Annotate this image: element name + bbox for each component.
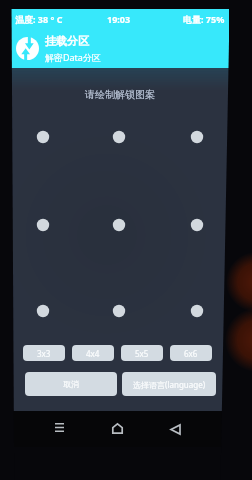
button[interactable]: 挂载分区 — [11, 29, 229, 68]
button[interactable]: 3x3 — [23, 345, 65, 361]
button[interactable]: Back — [163, 417, 187, 441]
staticText: 挂载分区 — [45, 34, 89, 48]
staticText: 5x5 — [135, 348, 149, 359]
button[interactable]: 6x6 — [170, 345, 212, 361]
button[interactable]: Home — [105, 416, 129, 440]
staticText: 温度: 38 ° C — [15, 13, 63, 25]
staticText: 选择语言(language) — [133, 379, 206, 390]
staticText: 19:03 — [107, 13, 131, 25]
staticText: 取消 — [63, 379, 79, 389]
button[interactable]: 4x4 — [72, 345, 114, 361]
staticText: 解密Data分区 — [45, 51, 101, 63]
button[interactable]: 取消 — [25, 372, 117, 396]
button[interactable]: Recents — [47, 415, 71, 439]
staticText: 3x3 — [37, 348, 51, 359]
staticText: 6x6 — [184, 348, 198, 359]
button[interactable]: 选择语言(language) — [122, 372, 216, 396]
staticText: 电量: 75% — [183, 13, 225, 25]
staticText: 请绘制解锁图案 — [11, 88, 229, 101]
button[interactable]: 5x5 — [121, 345, 163, 361]
staticText: 4x4 — [86, 348, 100, 359]
